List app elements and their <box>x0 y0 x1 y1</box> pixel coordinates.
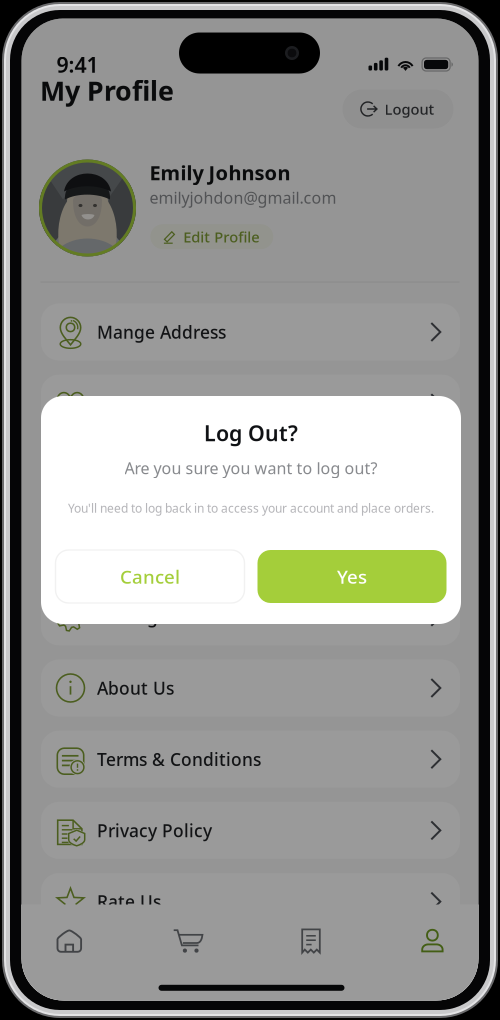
staticText: 9:41 <box>56 50 98 79</box>
button[interactable]: Orders <box>265 915 357 967</box>
button[interactable]: Profile <box>386 915 478 967</box>
button[interactable]: Rate Us <box>41 873 460 930</box>
staticText: My Orders <box>97 463 184 486</box>
staticText: You'll need to log back in to access you… <box>68 500 434 516</box>
staticText: Terms & Conditions <box>97 748 261 771</box>
button[interactable]: Cancel <box>55 550 244 603</box>
button[interactable]: Privacy Policy <box>41 802 460 859</box>
staticText: Yes <box>337 564 367 589</box>
staticText: Favourite <box>97 392 176 415</box>
staticText: Are you sure you want to log out? <box>124 457 377 479</box>
button[interactable]: Edit Profile <box>150 224 273 249</box>
staticText: My Profile <box>40 73 174 108</box>
button[interactable]: Notification <box>41 517 460 574</box>
staticText: emilyjohdon@gmail.com <box>149 187 336 208</box>
button[interactable]: Cart <box>142 915 234 967</box>
button[interactable]: Settings <box>41 588 460 645</box>
staticText: Settings <box>97 605 166 628</box>
button[interactable]: Home <box>23 915 115 967</box>
staticText: Log Out? <box>204 419 298 447</box>
button[interactable]: Terms & Conditions <box>41 731 460 788</box>
staticText: Logout <box>384 99 434 119</box>
button[interactable]: Logout <box>342 89 453 128</box>
staticText: About Us <box>97 676 174 699</box>
button[interactable]: Mange Address <box>41 303 460 360</box>
staticText: Emily Johnson <box>149 159 290 186</box>
staticText: Edit Profile <box>183 227 259 246</box>
staticText: Mange Address <box>97 320 226 343</box>
staticText: Rate Us <box>97 890 161 913</box>
button[interactable]: Favourite <box>41 375 460 432</box>
staticText: Privacy Policy <box>97 819 212 842</box>
staticText: Cancel <box>120 564 180 589</box>
button[interactable]: About Us <box>41 659 460 716</box>
button[interactable]: My Orders <box>41 446 460 503</box>
button[interactable]: Yes <box>257 550 446 603</box>
